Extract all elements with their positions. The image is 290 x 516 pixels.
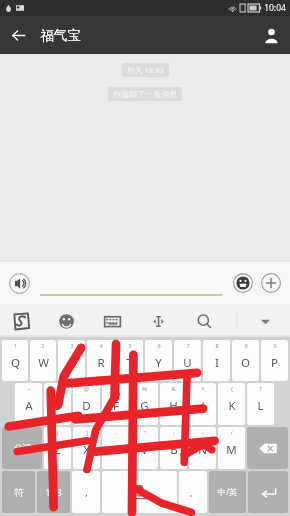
staticText: N: [198, 442, 207, 458]
button[interactable]: 6: [145, 340, 172, 381]
staticText: T: [126, 355, 133, 371]
staticText: E: [68, 355, 75, 371]
button[interactable]: ": [131, 427, 158, 469]
staticText: 8: [215, 342, 219, 349]
button[interactable]: 3: [58, 340, 85, 381]
staticText: 中/英: [217, 486, 238, 498]
staticText: :: [173, 429, 175, 436]
staticText: J: [201, 398, 205, 414]
staticText: Y: [155, 355, 162, 371]
staticText: 3: [70, 342, 74, 349]
button[interactable]: ;: [189, 427, 216, 469]
staticText: *: [201, 385, 205, 392]
staticText: 符: [14, 486, 24, 499]
button[interactable]: *: [189, 383, 216, 425]
staticText: B: [170, 442, 178, 458]
button[interactable]: 1: [2, 340, 28, 381]
staticText: 7: [186, 342, 190, 349]
button[interactable]: 5: [116, 340, 143, 381]
staticText: (: [231, 385, 233, 392]
button[interactable]: Enter: [248, 471, 288, 513]
staticText: W: [38, 355, 49, 371]
button[interactable]: ~: [15, 383, 42, 425]
staticText: Z: [54, 442, 61, 458]
button[interactable]: ?: [247, 383, 274, 425]
staticText: 10:04: [264, 2, 286, 14]
button[interactable]: 8: [203, 340, 230, 381]
staticText: 4: [99, 342, 103, 349]
staticText: A: [25, 398, 33, 414]
staticText: 你撤回了一条消息: [113, 89, 177, 99]
staticText: &: [171, 385, 176, 392]
button[interactable]: 中/英: [209, 471, 246, 513]
staticText: ~: [27, 385, 31, 392]
staticText: O: [241, 355, 250, 371]
button[interactable]: 符: [2, 471, 35, 513]
button[interactable]: !: [44, 383, 71, 425]
button[interactable]: 0: [261, 340, 288, 381]
button[interactable]: Collapse keyboard: [252, 308, 278, 334]
button[interactable]: ,: [72, 471, 100, 513]
staticText: ): [86, 429, 88, 436]
button[interactable]: (: [218, 383, 245, 425]
staticText: S: [54, 398, 61, 414]
button[interactable]: 分词: [2, 427, 42, 469]
button[interactable]: 123: [37, 471, 70, 513]
button[interactable]: :: [160, 427, 187, 469]
button[interactable]: [38, 270, 224, 296]
staticText: D: [82, 398, 91, 414]
staticText: @: [84, 385, 89, 392]
button[interactable]: Move cursor: [145, 308, 171, 334]
staticText: /: [230, 429, 233, 436]
staticText: X: [83, 442, 90, 458]
button[interactable]: &: [160, 383, 187, 425]
button[interactable]: 。: [179, 471, 207, 513]
staticText: R: [97, 355, 105, 371]
staticText: K: [228, 398, 236, 414]
staticText: ,: [85, 486, 88, 498]
staticText: H: [169, 398, 178, 414]
staticText: P: [271, 355, 278, 371]
button[interactable]: Backspace: [247, 427, 288, 469]
staticText: 2: [41, 342, 45, 349]
staticText: !: [57, 385, 59, 392]
button[interactable]: Expressions: [53, 308, 79, 334]
button[interactable]: Sogou input: [8, 308, 34, 334]
staticText: 分词: [14, 443, 31, 454]
button[interactable]: 9: [232, 340, 259, 381]
staticText: %: [142, 385, 147, 392]
staticText: ": [143, 429, 146, 436]
staticText: 6: [157, 342, 161, 349]
staticText: L: [257, 398, 264, 414]
staticText: ?: [259, 385, 262, 392]
staticText: -: [115, 429, 117, 436]
button[interactable]: Voice input: [6, 270, 32, 296]
button[interactable]: Contact info: [252, 16, 290, 54]
staticText: 1: [13, 342, 17, 349]
button[interactable]: /: [218, 427, 245, 469]
staticText: U: [183, 355, 192, 371]
staticText: G: [140, 398, 149, 414]
staticText: 福气宝: [40, 27, 81, 44]
button[interactable]: -: [102, 427, 129, 469]
button[interactable]: #: [102, 383, 129, 425]
button[interactable]: ): [73, 427, 100, 469]
staticText: ;: [202, 429, 204, 436]
button[interactable]: Search: [191, 308, 217, 334]
button[interactable]: Space / voice: [102, 471, 177, 513]
button[interactable]: @: [73, 383, 100, 425]
staticText: 9: [244, 342, 248, 349]
button[interactable]: More: [258, 270, 284, 296]
button[interactable]: 2: [30, 340, 56, 381]
button[interactable]: (: [44, 427, 71, 469]
button[interactable]: 7: [174, 340, 201, 381]
button[interactable]: Back: [0, 17, 36, 53]
button[interactable]: Keyboard layout: [99, 308, 125, 334]
button[interactable]: 4: [87, 340, 114, 381]
button[interactable]: %: [131, 383, 158, 425]
staticText: 5: [128, 342, 132, 349]
button[interactable]: Emoji: [230, 270, 256, 296]
staticText: I: [215, 355, 219, 371]
staticText: C: [112, 442, 120, 458]
